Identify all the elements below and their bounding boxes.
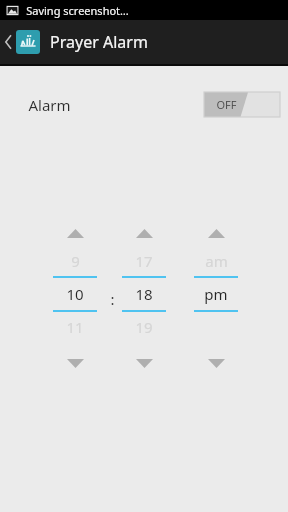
staticText: Saving screenshot… — [26, 3, 129, 18]
staticText: Prayer Alarm — [50, 31, 148, 53]
staticText: pm — [204, 284, 228, 304]
button[interactable]: Navigate up — [0, 20, 40, 64]
staticText: OFF — [216, 97, 237, 112]
button[interactable]: 18 — [122, 278, 166, 310]
staticText: am — [205, 251, 228, 271]
staticText: 19 — [135, 317, 153, 337]
staticText: 9 — [71, 251, 80, 271]
button[interactable]: Decrement — [122, 350, 166, 376]
button[interactable]: pm — [194, 278, 238, 310]
staticText: 11 — [66, 317, 84, 337]
button[interactable]: Increment — [194, 220, 238, 246]
button[interactable]: Decrement — [53, 350, 97, 376]
staticText: 17 — [135, 251, 153, 271]
staticText: Alarm — [28, 95, 71, 115]
staticText: 18 — [135, 284, 153, 304]
button[interactable]: 10 — [53, 278, 97, 310]
staticText: 10 — [66, 284, 84, 304]
button[interactable]: Increment — [122, 220, 166, 246]
button[interactable]: Alarm on off switch, off — [204, 92, 280, 117]
staticText: : — [110, 289, 115, 309]
button[interactable]: Decrement — [194, 350, 238, 376]
button[interactable]: Increment — [53, 220, 97, 246]
